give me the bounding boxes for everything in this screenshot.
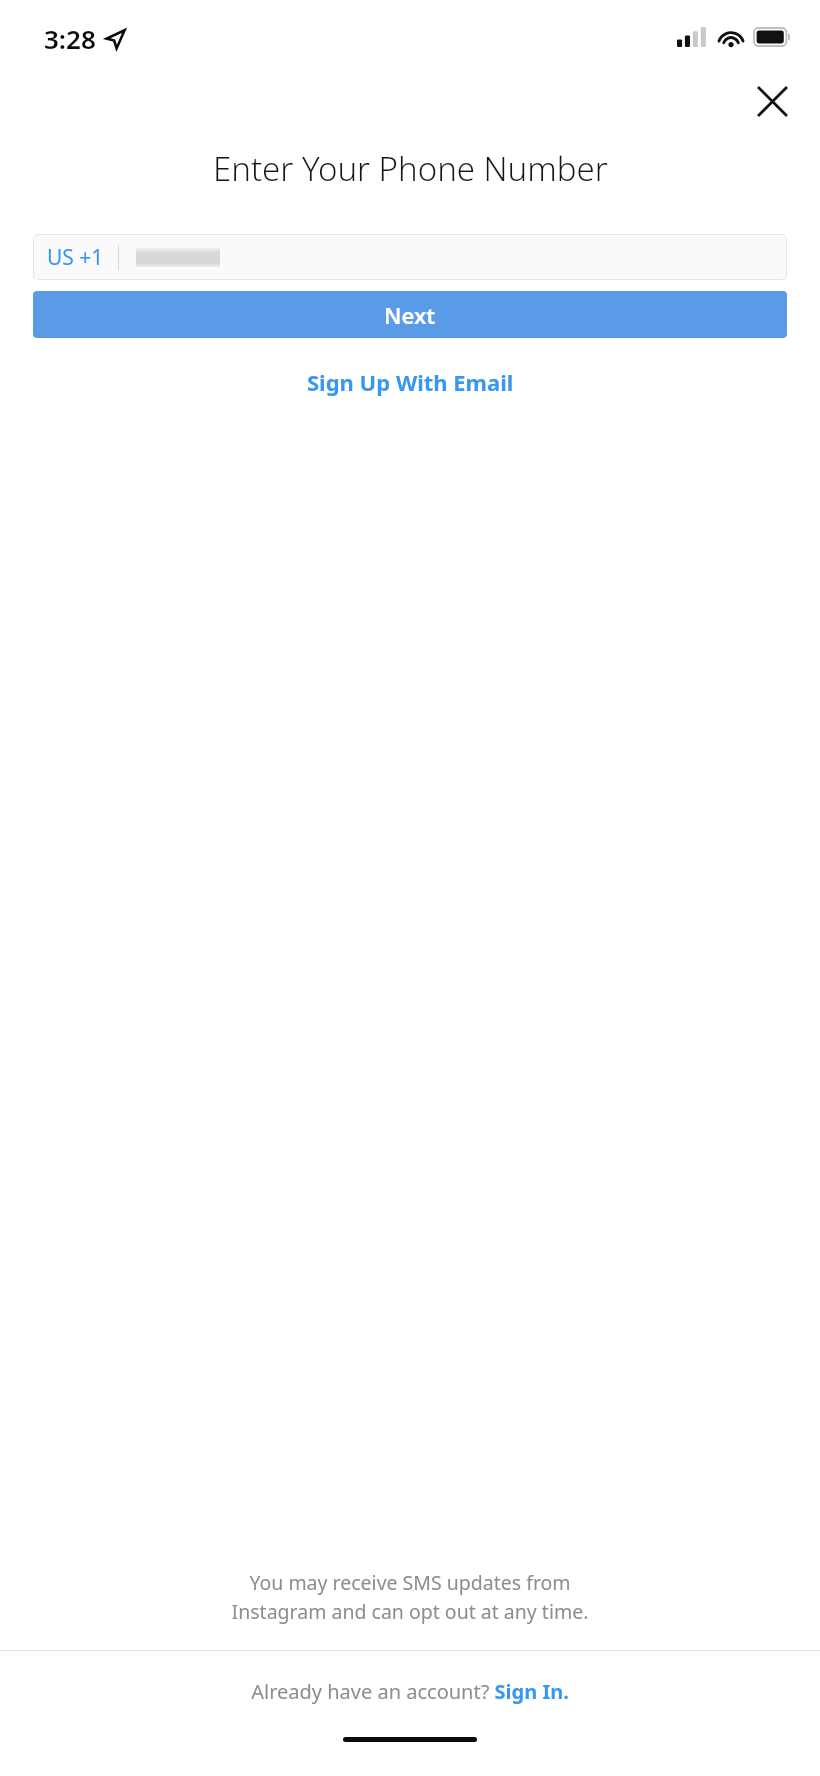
button[interactable]: Sign Up With Email <box>289 360 532 404</box>
staticText: You may receive SMS updates from Instagr… <box>40 1569 780 1624</box>
staticText: 3:28 <box>44 21 96 56</box>
staticText: Next <box>384 300 436 330</box>
staticText: Enter Your Phone Number <box>213 146 608 191</box>
button[interactable]: Already have an account? Sign In. <box>235 1668 585 1715</box>
button[interactable]: Close <box>746 75 798 127</box>
staticText: Already have an account? Sign In. <box>251 1678 569 1705</box>
button[interactable]: US +1 <box>33 234 787 280</box>
staticText: US +1 <box>47 243 104 272</box>
button[interactable]: Next <box>33 291 787 338</box>
staticText: Sign Up With Email <box>307 367 514 397</box>
